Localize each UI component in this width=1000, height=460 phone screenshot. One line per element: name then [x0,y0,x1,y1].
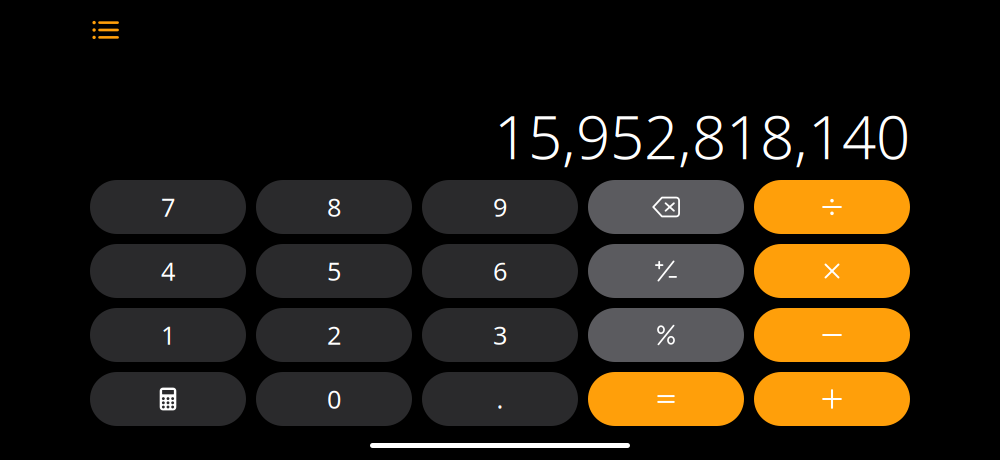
staticText: 7 [161,190,175,224]
staticText: 4 [161,254,175,288]
staticText: 2 [327,318,341,352]
staticText: 5 [327,254,341,288]
staticText: 15,952,818,140 [494,96,910,176]
button[interactable]: 2 [256,308,412,362]
button[interactable]: 6 [422,244,578,298]
button[interactable]: Decimal point [422,372,578,426]
button[interactable]: Multiply [754,244,910,298]
button[interactable]: 4 [90,244,246,298]
button[interactable]: Plus minus [588,244,744,298]
staticText: 3 [493,318,507,352]
staticText: 6 [493,254,507,288]
button[interactable]: Divide [754,180,910,234]
button[interactable]: 0 [256,372,412,426]
button[interactable]: Equals [588,372,744,426]
button[interactable]: Percent [588,308,744,362]
button[interactable]: 7 [90,180,246,234]
staticText: 8 [327,190,341,224]
staticText: . [496,382,503,416]
button[interactable]: 1 [90,308,246,362]
button[interactable]: Plus [754,372,910,426]
button[interactable]: Minus [754,308,910,362]
staticText: 9 [493,190,507,224]
staticText: 0 [327,382,341,416]
button[interactable]: 3 [422,308,578,362]
button[interactable]: History [81,8,129,52]
button[interactable]: Calculator [90,372,246,426]
staticText: 1 [161,318,175,352]
button[interactable]: 8 [256,180,412,234]
button[interactable]: Delete [588,180,744,234]
button[interactable]: 9 [422,180,578,234]
button[interactable]: 5 [256,244,412,298]
